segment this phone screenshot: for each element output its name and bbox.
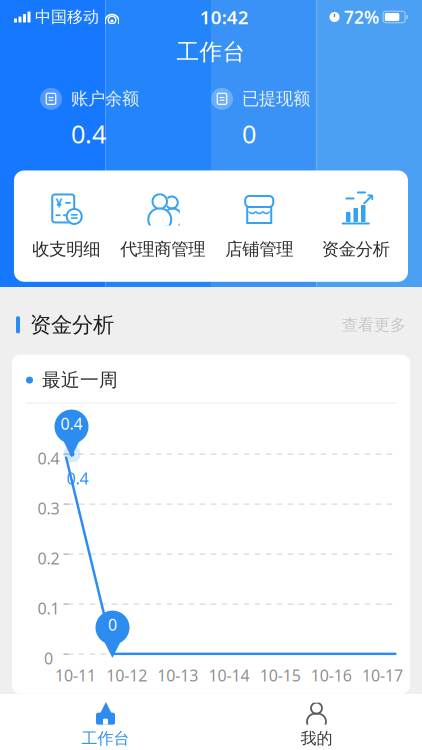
staticText: 账户余额 [71,88,139,109]
button[interactable]: 我的 [211,702,422,748]
staticText: 最近一周 [42,369,118,392]
staticText: ▼ [102,630,123,661]
staticText: 我的 [300,729,332,748]
staticText: 查看更多 [342,315,406,335]
staticText: 10-14 [208,665,249,686]
staticText: 0 [108,614,117,635]
staticText: 10-11 [55,665,96,686]
staticText: 10-15 [260,665,301,686]
button[interactable]: 查看更多 [332,309,406,341]
staticText: 收支明细 [32,238,100,260]
button[interactable]: 代理商管理 [114,188,211,264]
staticText: 0.4 [71,117,106,150]
staticText: 10-17 [362,665,403,686]
staticText: 10-12 [106,665,147,686]
staticText: 0 [242,117,256,150]
staticText: 0.4 [66,468,88,489]
staticText: ▲ [97,696,114,721]
button[interactable]: ¥ [18,188,114,264]
staticText: 资金分析 [322,238,390,260]
staticText: 10-16 [311,665,352,686]
staticText: 已提现额 [242,88,310,109]
staticText: ↗ [360,190,375,209]
button[interactable]: ▲ [0,702,211,748]
staticText: ¥ [55,195,62,211]
staticText: 0.4 [37,448,59,469]
staticText: 10-13 [157,665,198,686]
staticText: ▼ [61,429,82,460]
button[interactable]: ↗ [307,188,404,264]
staticText: 店铺管理 [225,238,293,260]
staticText: 10:42 [200,5,249,29]
staticText: 资金分析 [30,312,114,338]
staticText: 0.3 [37,498,59,519]
staticText: 工作台 [81,729,129,748]
staticText: 0.1 [37,598,59,619]
staticText: 工作台 [176,38,245,66]
staticText: 中国移动 [35,7,99,27]
button[interactable]: 店铺管理 [211,188,307,264]
staticText: 0.4 [60,413,82,434]
staticText: 0.2 [37,548,59,569]
staticText: 72% [344,5,379,28]
staticText: 代理商管理 [120,238,205,260]
staticText: 0 [44,648,53,669]
